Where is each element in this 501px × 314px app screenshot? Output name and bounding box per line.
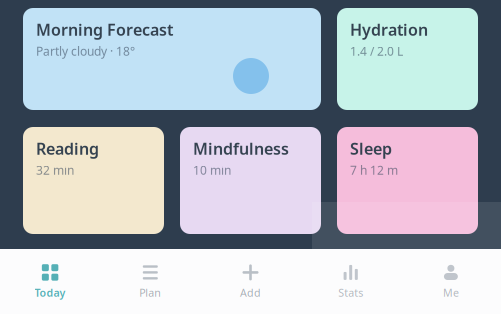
staticText: 10 min xyxy=(193,162,231,178)
button[interactable]: Me xyxy=(401,249,501,314)
staticText: 32 min xyxy=(36,162,74,178)
button[interactable]: Hydration xyxy=(337,8,478,110)
staticText: 1.4 / 2.0 L xyxy=(350,43,403,59)
staticText: Reading xyxy=(36,138,99,159)
staticText: Add xyxy=(240,285,261,300)
staticText: Sleep xyxy=(350,138,392,159)
button[interactable]: Reading xyxy=(23,127,164,234)
button[interactable]: Sleep xyxy=(337,127,478,234)
button[interactable]: Mindfulness xyxy=(180,127,321,234)
button[interactable]: Stats xyxy=(301,249,401,314)
staticText: 7 h 12 m xyxy=(350,162,398,178)
staticText: Partly cloudy · 18° xyxy=(36,43,135,59)
staticText: Mindfulness xyxy=(193,138,289,159)
button[interactable]: Today xyxy=(0,249,100,314)
staticText: Plan xyxy=(139,285,161,300)
button[interactable]: Plan xyxy=(100,249,200,314)
staticText: Me xyxy=(443,285,459,300)
staticText: Stats xyxy=(338,285,363,300)
button[interactable]: Add xyxy=(200,249,301,314)
staticText: Today xyxy=(35,285,66,300)
staticText: Morning Forecast xyxy=(36,19,173,40)
staticText: Hydration xyxy=(350,19,428,40)
button[interactable]: Morning Forecast xyxy=(23,8,321,110)
